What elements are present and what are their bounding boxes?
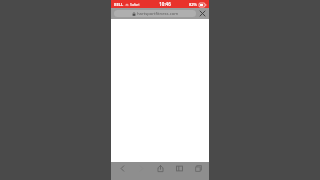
- staticText: BELL: [114, 2, 124, 7]
- button[interactable]: Share: [153, 162, 167, 175]
- staticText: Safari: [130, 2, 140, 7]
- staticText: hartsportfitness.com: [137, 11, 179, 17]
- staticText: 82%: [189, 2, 198, 7]
- button[interactable]: hartsportfitness.com: [114, 10, 196, 17]
- button[interactable]: Back: [115, 162, 129, 175]
- button[interactable]: Stop loading: [199, 10, 206, 17]
- staticText: 10:46: [159, 1, 171, 7]
- button[interactable]: Tabs: [191, 162, 205, 175]
- button[interactable]: Bookmarks: [172, 162, 186, 175]
